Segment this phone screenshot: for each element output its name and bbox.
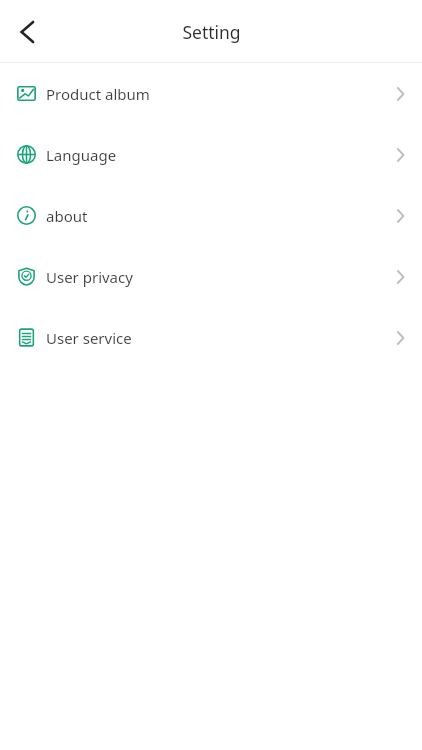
button[interactable]: Back	[6, 10, 50, 54]
staticText: Product album	[46, 84, 390, 104]
staticText: Language	[46, 145, 390, 165]
button[interactable]: User service	[0, 307, 422, 368]
staticText: User privacy	[46, 267, 390, 287]
button[interactable]: about	[0, 185, 422, 246]
button[interactable]: Language	[0, 124, 422, 185]
button[interactable]: User privacy	[0, 246, 422, 307]
staticText: User service	[46, 328, 390, 348]
button[interactable]: Product album	[0, 63, 422, 124]
staticText: about	[46, 206, 390, 226]
staticText: Setting	[182, 20, 241, 44]
